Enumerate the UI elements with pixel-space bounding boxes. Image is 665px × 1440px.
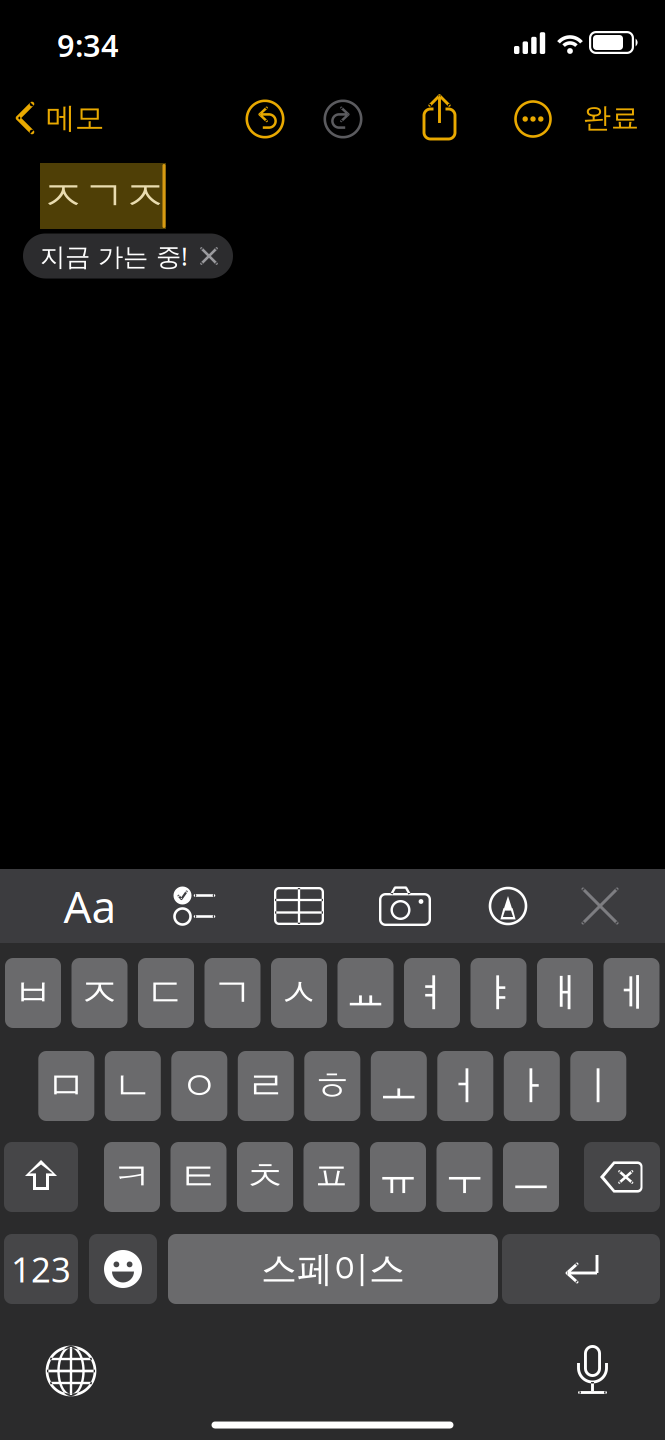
staticText: ㄹ	[246, 1061, 286, 1110]
button[interactable]: 완료	[573, 92, 649, 144]
button[interactable]: ㄹ	[238, 1051, 294, 1121]
staticText: ㅗ	[379, 1061, 419, 1110]
button[interactable]: ㅁ	[38, 1051, 94, 1121]
button[interactable]: ㅐ	[537, 958, 593, 1028]
staticText: 9:34	[57, 25, 119, 65]
staticText: ㅁ	[46, 1061, 86, 1110]
button[interactable]: 메모	[0, 90, 104, 146]
staticText: ㅡ	[511, 1152, 551, 1201]
button[interactable]: ㅓ	[437, 1051, 493, 1121]
button[interactable]: ㄱ	[204, 958, 260, 1028]
staticText: ㅠ	[378, 1152, 418, 1201]
button[interactable]: ㅠ	[370, 1142, 426, 1212]
button[interactable]: ㅡ	[503, 1142, 559, 1212]
button[interactable]: ㅎ	[304, 1051, 360, 1121]
button[interactable]: Markup	[460, 869, 556, 943]
staticText: 메모	[46, 100, 104, 136]
button[interactable]: ㅕ	[404, 958, 460, 1028]
staticText: ㄴ	[113, 1061, 153, 1110]
button[interactable]: ㅊ	[237, 1142, 293, 1212]
button[interactable]: Dictation	[569, 1343, 615, 1399]
staticText: ㅏ	[512, 1061, 552, 1110]
button[interactable]: Delete	[584, 1142, 660, 1212]
button[interactable]: ㅇ	[171, 1051, 227, 1121]
staticText: ㅋ	[112, 1152, 152, 1201]
staticText: ㄱ	[212, 968, 252, 1017]
staticText: 스페이스	[261, 1247, 405, 1291]
staticText: ㅛ	[345, 968, 385, 1017]
staticText: ㅅ	[279, 968, 319, 1017]
button[interactable]: Return	[502, 1234, 660, 1304]
staticText: ㅊ	[245, 1152, 285, 1201]
button[interactable]: ㅋ	[104, 1142, 160, 1212]
button[interactable]: ㅅ	[271, 958, 327, 1028]
button[interactable]: Table	[251, 869, 347, 943]
button[interactable]: ㅣ	[570, 1051, 626, 1121]
button[interactable]: 스페이스	[168, 1234, 498, 1304]
staticText: ㅐ	[545, 968, 585, 1017]
staticText: ㅌ	[178, 1152, 218, 1201]
staticText: ㅜ	[444, 1152, 484, 1201]
button[interactable]: ㄷ	[138, 958, 194, 1028]
button[interactable]: ㅂ	[5, 958, 61, 1028]
button[interactable]: Undo	[245, 99, 285, 139]
staticText: ㅈㄱㅈ	[42, 171, 165, 221]
staticText: ㅎ	[312, 1061, 352, 1110]
staticText: ㅔ	[611, 968, 651, 1017]
button[interactable]: ㅍ	[303, 1142, 359, 1212]
staticText: ㄷ	[146, 968, 186, 1017]
button[interactable]: Shift	[4, 1142, 78, 1212]
button[interactable]: 지금 가는 중!	[23, 233, 233, 278]
staticText: ㅣ	[578, 1061, 618, 1110]
staticText: 지금 가는 중!	[40, 239, 188, 273]
button[interactable]: ㅛ	[337, 958, 393, 1028]
button[interactable]: Insert photo	[357, 869, 453, 943]
staticText: ㅍ	[311, 1152, 351, 1201]
staticText: ㅂ	[13, 968, 53, 1017]
staticText: ㅓ	[445, 1061, 485, 1110]
staticText: ㅇ	[179, 1061, 219, 1110]
button[interactable]: ㅗ	[371, 1051, 427, 1121]
button[interactable]: Hide keyboard	[550, 869, 650, 943]
button[interactable]: ㅏ	[504, 1051, 560, 1121]
button[interactable]: ㅌ	[170, 1142, 226, 1212]
button[interactable]: Redo	[323, 99, 363, 139]
button[interactable]: ㅈ	[71, 958, 127, 1028]
button[interactable]: ㅑ	[470, 958, 526, 1028]
staticText: Aa	[63, 877, 116, 935]
button[interactable]: ㅔ	[603, 958, 659, 1028]
staticText: ㅕ	[412, 968, 452, 1017]
button[interactable]: More	[513, 99, 553, 139]
button[interactable]: 123	[4, 1234, 78, 1304]
button[interactable]: Checklist	[146, 869, 242, 943]
button[interactable]: Aa	[45, 869, 135, 943]
button[interactable]: ㄴ	[105, 1051, 161, 1121]
button[interactable]: Share	[416, 92, 462, 148]
staticText: 완료	[583, 101, 639, 135]
button[interactable]: Emoji	[89, 1234, 157, 1304]
staticText: ㅑ	[478, 968, 518, 1017]
button[interactable]: ㅜ	[436, 1142, 492, 1212]
staticText: 123	[11, 1246, 71, 1292]
button[interactable]: Next keyboard	[45, 1345, 97, 1397]
staticText: ㅈ	[79, 968, 119, 1017]
